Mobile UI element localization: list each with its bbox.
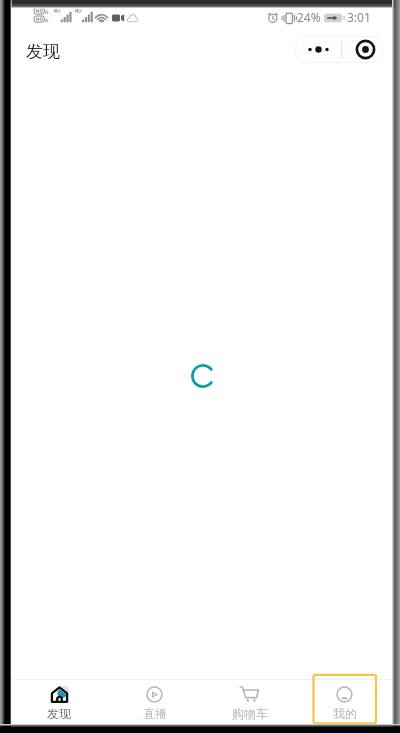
button[interactable]: 发现 [11, 680, 107, 726]
button[interactable]: 直播 [107, 680, 202, 726]
staticText: 发现 [47, 706, 71, 721]
staticText: 直播 [143, 706, 167, 721]
button[interactable]: 购物车 [202, 680, 297, 726]
staticText: 发现 [26, 41, 60, 62]
staticText: 我的 [333, 706, 357, 721]
button[interactable]: More options and close mini program [294, 36, 384, 63]
staticText: 购物车 [232, 706, 268, 721]
button[interactable]: 我的 [297, 680, 392, 726]
staticText: 24% [297, 9, 321, 25]
staticText: 3:01 [347, 9, 371, 25]
